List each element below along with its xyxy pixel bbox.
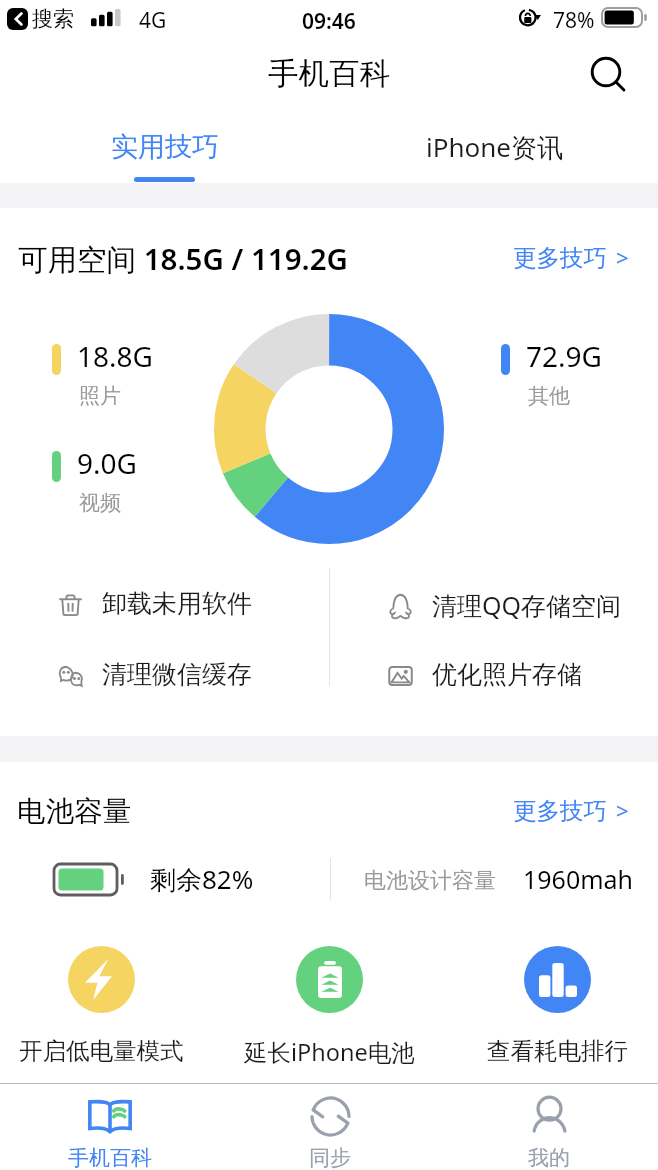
staticText: 78% [553,6,595,35]
button[interactable]: 开启低电量模式 [0,946,211,1066]
staticText: > [616,242,629,272]
button[interactable]: 卸载未用软件 [58,588,252,619]
staticText: 可用空间 18.5G / 119.2G [18,238,349,278]
staticText: 9.0G [77,444,137,482]
staticText: 更多技巧 [513,796,607,826]
staticText: 电池容量 [17,794,131,830]
button[interactable]: 更多技巧 [513,796,629,826]
staticText: 72.9G [526,337,602,375]
staticText: iPhone资讯 [426,129,563,165]
staticText: 其他 [528,383,570,409]
staticText: 1960mah [523,862,634,896]
staticText: 开启低电量模式 [19,1036,184,1066]
staticText: > [616,795,629,825]
button[interactable]: 查看耗电排行 [447,946,658,1066]
button[interactable]: iPhone资讯 [329,108,658,183]
staticText: 更多技巧 [513,243,607,273]
button[interactable]: Search [580,46,632,98]
staticText: 18.8G [77,337,153,375]
button[interactable]: 延长iPhone电池 [219,946,439,1068]
staticText: 手机百科 [68,1145,152,1170]
button[interactable]: 手机百科 [0,1084,220,1170]
staticText: 4G [139,6,167,35]
button[interactable]: 实用技巧 [0,108,329,183]
staticText: 视频 [79,490,121,516]
button[interactable]: 我的 [439,1084,658,1170]
button[interactable]: Back [7,8,28,30]
staticText: 查看耗电排行 [487,1036,628,1066]
button[interactable]: 同步 [220,1084,439,1170]
button[interactable]: 清理QQ存储空间 [388,588,622,622]
staticText: 延长iPhone电池 [244,1036,415,1068]
staticText: 清理微信缓存 [102,659,252,690]
staticText: 我的 [528,1145,570,1170]
staticText: 清理QQ存储空间 [432,588,622,622]
staticText: 卸载未用软件 [102,588,252,619]
button[interactable]: 清理微信缓存 [58,659,252,690]
staticText: 剩余82% [150,861,254,897]
staticText: 同步 [309,1145,351,1170]
staticText: 搜索 [32,6,74,32]
button[interactable]: 更多技巧 [513,243,629,273]
staticText: 手机百科 [268,55,390,93]
staticText: 电池设计容量 [364,867,496,895]
staticText: 实用技巧 [111,130,219,164]
staticText: 照片 [79,383,121,409]
staticText: 优化照片存储 [432,659,582,690]
staticText: 09:46 [302,7,356,36]
button[interactable]: 优化照片存储 [388,659,582,690]
